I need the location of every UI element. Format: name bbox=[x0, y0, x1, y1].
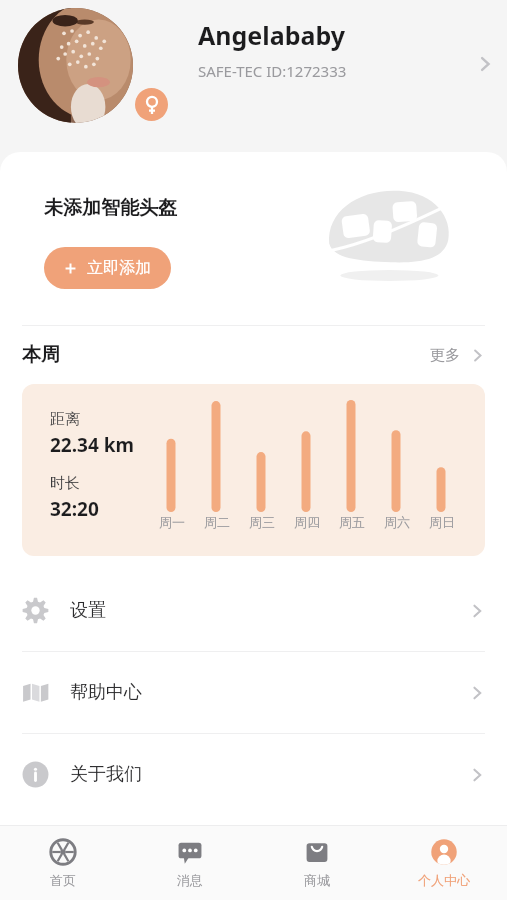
staticText: 时长 bbox=[50, 474, 80, 493]
staticText: 周二 bbox=[204, 514, 230, 530]
staticText: 周一 bbox=[159, 514, 185, 530]
staticText: 未添加智能头盔 bbox=[44, 196, 177, 220]
staticText: 关于我们 bbox=[70, 763, 142, 786]
staticText: 本周 bbox=[22, 343, 60, 367]
button[interactable]: 更多 bbox=[430, 346, 485, 365]
other: Gender: female bbox=[135, 88, 168, 121]
other: Open profile details bbox=[463, 42, 507, 86]
staticText: 更多 bbox=[430, 346, 460, 365]
staticText: 32:20 bbox=[50, 496, 99, 522]
button[interactable]: 帮助中心 bbox=[0, 652, 507, 733]
staticText: 消息 bbox=[177, 872, 203, 888]
button[interactable]: 个人中心 bbox=[380, 826, 507, 900]
staticText: Angelababy bbox=[198, 18, 346, 52]
staticText: 个人中心 bbox=[418, 872, 470, 888]
staticText: 22.34 km bbox=[50, 432, 135, 458]
button[interactable]: 商城 bbox=[253, 826, 380, 900]
button[interactable]: Gender: female bbox=[0, 0, 507, 152]
staticText: 设置 bbox=[70, 599, 106, 622]
staticText: 周六 bbox=[384, 514, 410, 530]
staticText: 立即添加 bbox=[87, 258, 151, 278]
button[interactable]: 立即添加 bbox=[44, 247, 171, 289]
staticText: SAFE-TEC ID:1272333 bbox=[198, 61, 347, 81]
staticText: 首页 bbox=[50, 872, 76, 888]
staticText: 周三 bbox=[249, 514, 275, 530]
staticText: 周五 bbox=[339, 514, 365, 530]
staticText: 周四 bbox=[294, 514, 320, 530]
staticText: 商城 bbox=[304, 872, 330, 888]
staticText: 周日 bbox=[429, 514, 455, 530]
button[interactable]: 设置 bbox=[0, 570, 507, 651]
staticText: 距离 bbox=[50, 410, 80, 429]
staticText: 帮助中心 bbox=[70, 681, 142, 704]
button[interactable]: 关于我们 bbox=[0, 734, 507, 815]
button[interactable]: 消息 bbox=[126, 826, 253, 900]
button[interactable]: 首页 bbox=[0, 826, 126, 900]
button[interactable]: 距离 bbox=[22, 384, 485, 556]
